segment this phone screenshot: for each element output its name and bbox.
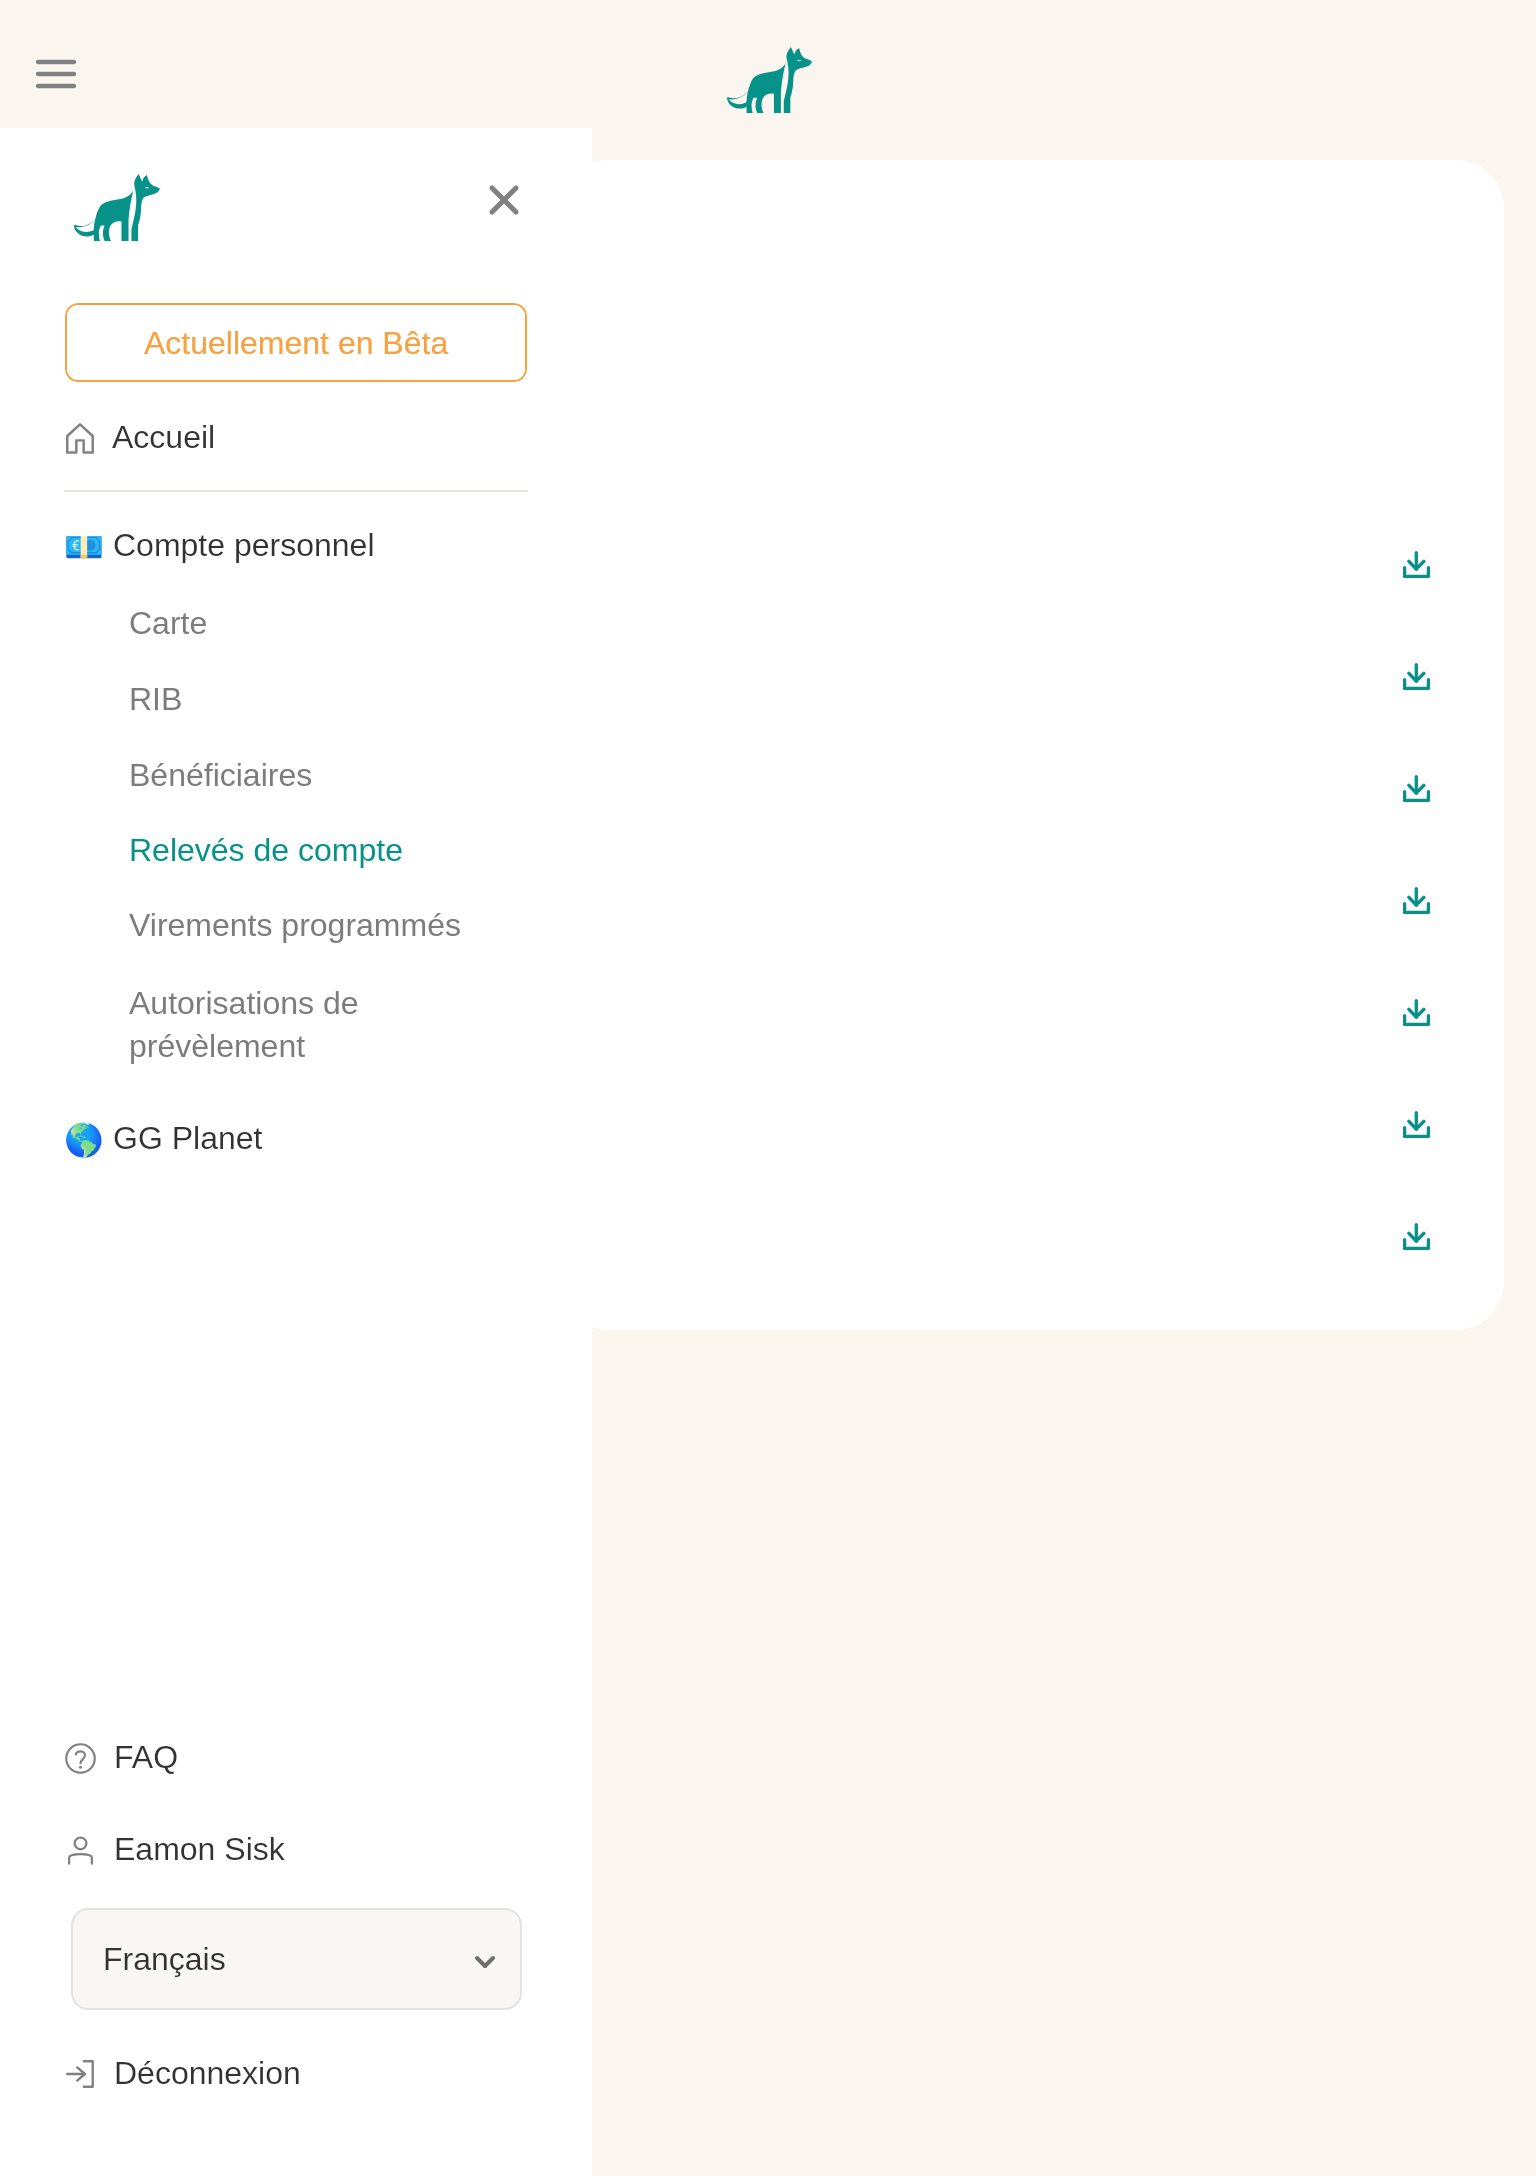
button[interactable]: Télécharger le relevé	[1384, 868, 1448, 932]
staticText: 💶	[64, 528, 104, 566]
button[interactable]: Télécharger le relevé	[1384, 1092, 1448, 1156]
button[interactable]: Relevés de compte	[129, 813, 528, 875]
staticText: Virements programmés	[129, 907, 461, 943]
staticText: Relevés de compte	[129, 832, 403, 868]
staticText: FAQ	[114, 1739, 179, 1775]
staticText: Déconnexion	[114, 2055, 301, 2091]
staticText: Eamon Sisk	[114, 1831, 285, 1867]
button[interactable]: Ouvrir le menu	[16, 34, 96, 114]
button[interactable]: Carte	[129, 586, 528, 648]
button[interactable]: Télécharger le relevé	[1384, 1204, 1448, 1268]
button[interactable]: Fermer le menu	[464, 160, 544, 240]
button[interactable]: Accueil	[64, 404, 528, 472]
button[interactable]: Français	[71, 1908, 522, 2010]
button[interactable]: 💶	[64, 516, 528, 582]
staticText: Accueil	[112, 419, 216, 455]
staticText: Actuellement en Bêta	[144, 325, 449, 361]
button[interactable]: FAQ	[64, 1731, 528, 1797]
button[interactable]: Déconnexion	[64, 2047, 528, 2113]
button[interactable]: Actuellement en Bêta	[65, 303, 527, 382]
button[interactable]: Télécharger le relevé	[1384, 532, 1448, 596]
staticText: RIB	[129, 681, 183, 717]
staticText: Autorisations de	[129, 985, 359, 1021]
staticText: Français	[103, 1941, 226, 1977]
button[interactable]: 🌎	[64, 1112, 528, 1178]
staticText: GG Planet	[113, 1120, 263, 1156]
button[interactable]: Télécharger le relevé	[1384, 756, 1448, 820]
button[interactable]: RIB	[129, 662, 528, 724]
staticText: prévèlement	[129, 1028, 306, 1064]
button[interactable]: Télécharger le relevé	[1384, 644, 1448, 708]
button[interactable]: Télécharger le relevé	[1384, 980, 1448, 1044]
staticText: Compte personnel	[113, 527, 375, 563]
staticText: Bénéficiaires	[129, 757, 313, 793]
staticText: Carte	[129, 605, 208, 641]
staticText: 🌎	[64, 1121, 104, 1159]
button[interactable]: Virements programmés	[129, 888, 528, 950]
button[interactable]: Autorisations de	[129, 975, 528, 1071]
button[interactable]: Eamon Sisk	[64, 1823, 528, 1889]
button[interactable]: Bénéficiaires	[129, 738, 528, 800]
